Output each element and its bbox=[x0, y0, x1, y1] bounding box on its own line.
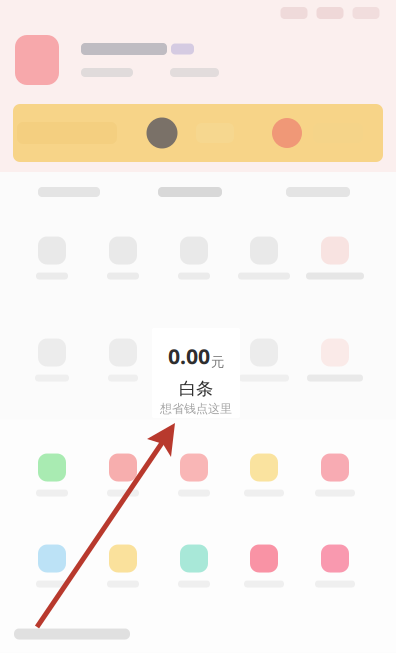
button[interactable] bbox=[13, 104, 383, 162]
button[interactable] bbox=[88, 451, 158, 499]
staticText: 白条 bbox=[179, 378, 213, 399]
button[interactable] bbox=[229, 234, 299, 282]
button[interactable] bbox=[158, 187, 222, 197]
button[interactable] bbox=[17, 336, 87, 384]
button[interactable] bbox=[159, 451, 229, 499]
staticText: 想省钱点这里 bbox=[160, 401, 232, 416]
button[interactable]: Messages bbox=[316, 7, 343, 19]
button[interactable] bbox=[88, 336, 158, 384]
button[interactable]: Search bbox=[280, 7, 307, 19]
button[interactable] bbox=[17, 451, 87, 499]
button[interactable] bbox=[159, 336, 229, 384]
button[interactable] bbox=[159, 234, 229, 282]
button[interactable] bbox=[300, 451, 370, 499]
staticText: 元 bbox=[211, 354, 224, 370]
button[interactable] bbox=[88, 542, 158, 590]
button[interactable] bbox=[88, 234, 158, 282]
button[interactable] bbox=[17, 234, 87, 282]
button[interactable] bbox=[38, 187, 100, 197]
button[interactable] bbox=[300, 542, 370, 590]
button[interactable] bbox=[17, 542, 87, 590]
button[interactable] bbox=[159, 542, 229, 590]
button[interactable] bbox=[300, 336, 370, 384]
button[interactable] bbox=[15, 34, 355, 86]
button[interactable] bbox=[229, 451, 299, 499]
button[interactable] bbox=[229, 336, 299, 384]
button[interactable]: More bbox=[352, 7, 379, 19]
button[interactable]: 0.00 bbox=[152, 328, 240, 418]
button[interactable] bbox=[300, 234, 370, 282]
staticText: 0.00 bbox=[168, 342, 210, 370]
button[interactable] bbox=[229, 542, 299, 590]
